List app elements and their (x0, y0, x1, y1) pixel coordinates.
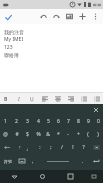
button[interactable]: / (56, 141, 67, 154)
staticText: 」 (26, 145, 31, 151)
button[interactable]: 6 (53, 115, 63, 128)
staticText: I (18, 96, 20, 102)
button[interactable]: ) (93, 128, 103, 141)
button[interactable]: * (53, 128, 63, 141)
button[interactable]: Enter (88, 154, 103, 168)
button[interactable]: Hide keyboard (0, 170, 28, 183)
staticText: ) (97, 131, 99, 138)
button[interactable]: Symbols (0, 154, 16, 168)
button[interactable]: Done (2, 11, 14, 23)
button[interactable]: Backspace (89, 141, 103, 154)
staticText: 9 (87, 118, 90, 125)
button[interactable]: 5 (43, 115, 53, 128)
staticText: 3 (26, 118, 29, 125)
button[interactable]: Period (78, 154, 88, 168)
button[interactable]: Bulleted list (77, 93, 90, 104)
staticText: 我的注音 (4, 29, 24, 35)
staticText: ! (72, 144, 74, 151)
staticText: 8 (77, 118, 80, 125)
button[interactable]: Add (76, 10, 89, 23)
staticText: * (57, 131, 60, 138)
button[interactable]: - (63, 128, 73, 141)
button[interactable]: 3 (22, 115, 33, 128)
button[interactable]: Shift (0, 141, 13, 154)
staticText: + (77, 131, 80, 138)
staticText: 4 (37, 118, 40, 125)
staticText: & (46, 131, 50, 138)
staticText: 符號 (4, 159, 12, 164)
button[interactable]: $ (22, 128, 33, 141)
button[interactable]: Italic (12, 93, 25, 104)
staticText: 5 (47, 118, 50, 125)
button[interactable]: Keyboard settings (84, 170, 103, 183)
staticText: , (32, 158, 34, 165)
button[interactable]: Switch keyboard (16, 154, 28, 168)
staticText: 聯絡簿 (4, 52, 19, 58)
button[interactable]: 「 (13, 141, 23, 154)
staticText: 123 (4, 44, 13, 51)
button[interactable]: Recent apps (56, 170, 84, 183)
staticText: . (82, 158, 84, 165)
button[interactable]: 8 (73, 115, 83, 128)
button[interactable]: Align left (38, 93, 51, 104)
button[interactable]: 9 (83, 115, 93, 128)
button[interactable]: 2 (11, 115, 22, 128)
staticText: 0 (97, 118, 100, 125)
staticText: % (36, 131, 41, 138)
staticText: - (67, 131, 69, 138)
button[interactable]: ( (83, 128, 93, 141)
button[interactable]: 4 (33, 115, 43, 128)
staticText: @ (3, 131, 8, 138)
button[interactable]: : (34, 141, 45, 154)
button[interactable]: 7 (63, 115, 73, 128)
staticText: ? (82, 144, 85, 151)
staticText: ( (87, 131, 89, 138)
staticText: # (15, 131, 19, 138)
staticText: U (30, 96, 34, 102)
button[interactable]: 0 (93, 115, 103, 128)
button[interactable]: @ (0, 128, 11, 141)
button[interactable]: Bold (0, 93, 12, 104)
button[interactable]: + (73, 128, 83, 141)
button[interactable]: 」 (23, 141, 34, 154)
staticText: 6 (57, 118, 60, 125)
button[interactable]: More options (89, 10, 102, 23)
staticText: ; (50, 144, 52, 151)
button[interactable]: Comma (28, 154, 38, 168)
button[interactable]: Numbered list (90, 93, 103, 104)
staticText: / (61, 144, 63, 151)
button[interactable]: % (33, 128, 43, 141)
staticText: 2 (15, 118, 18, 125)
button[interactable]: Home (28, 170, 56, 183)
button[interactable]: Close suggestions (92, 106, 100, 114)
staticText: : (39, 144, 41, 151)
button[interactable]: # (11, 128, 22, 141)
staticText: 1 (4, 118, 7, 125)
staticText: $ (26, 131, 29, 138)
staticText: 「 (16, 145, 21, 151)
staticText: My IMEI (4, 36, 24, 43)
button[interactable]: ; (45, 141, 56, 154)
button[interactable]: Redo (50, 10, 63, 23)
button[interactable]: Space (38, 154, 78, 168)
button[interactable]: Align center (51, 93, 64, 104)
button[interactable]: ! (67, 141, 78, 154)
button[interactable]: Underline (25, 93, 38, 104)
button[interactable]: & (43, 128, 53, 141)
button[interactable]: 1 (0, 115, 11, 128)
staticText: 7 (67, 118, 70, 125)
button[interactable]: Insert image (63, 10, 76, 23)
button[interactable]: Undo (37, 10, 50, 23)
button[interactable]: ? (78, 141, 89, 154)
staticText: B (4, 96, 8, 102)
button[interactable]: Align right (64, 93, 77, 104)
